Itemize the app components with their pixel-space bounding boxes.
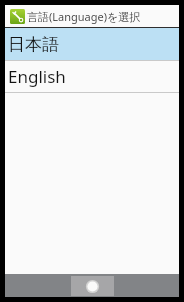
- button[interactable]: Home: [71, 276, 114, 296]
- staticText: 日本語: [8, 34, 59, 55]
- button[interactable]: English: [5, 61, 179, 92]
- staticText: English: [8, 65, 66, 88]
- button[interactable]: 言語(Language)を選択: [5, 5, 179, 27]
- button[interactable]: 日本語: [5, 28, 179, 60]
- staticText: 言語(Language)を選択: [27, 9, 141, 24]
